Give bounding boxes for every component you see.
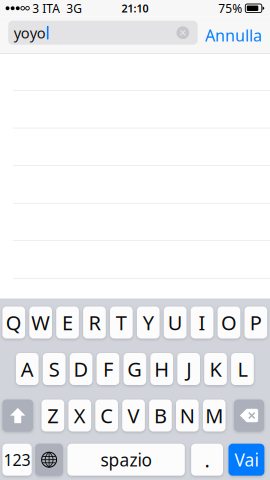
button[interactable]: A: [16, 353, 39, 385]
staticText: B: [154, 402, 167, 429]
staticText: 123: [4, 449, 31, 470]
button[interactable]: W: [29, 306, 52, 338]
button[interactable]: C: [95, 399, 118, 431]
staticText: M: [205, 402, 223, 429]
staticText: D: [73, 356, 88, 382]
staticText: A: [21, 356, 34, 382]
button[interactable]: T: [110, 306, 133, 338]
button[interactable]: Y: [137, 306, 160, 338]
staticText: V: [127, 402, 139, 429]
staticText: R: [88, 309, 100, 336]
button[interactable]: .: [191, 444, 223, 476]
button[interactable]: R: [83, 306, 106, 338]
button[interactable]: P: [244, 306, 267, 338]
button[interactable]: G: [123, 353, 146, 385]
button[interactable]: D: [70, 353, 92, 385]
staticText: F: [103, 356, 113, 382]
button[interactable]: Clear text: [173, 23, 192, 42]
button[interactable]: K: [204, 353, 227, 385]
staticText: Z: [47, 402, 58, 429]
staticText: G: [127, 356, 142, 382]
button[interactable]: F: [97, 353, 119, 385]
button[interactable]: Annulla: [205, 16, 267, 54]
button[interactable]: Backspace: [234, 399, 264, 431]
button[interactable]: X: [68, 399, 91, 431]
staticText: U: [168, 309, 183, 336]
button[interactable]: Q: [2, 306, 25, 338]
button[interactable]: S: [43, 353, 65, 385]
staticText: 3G: [66, 0, 82, 16]
button[interactable]: H: [150, 353, 173, 385]
staticText: 75%: [218, 0, 242, 16]
staticText: spazio: [101, 448, 152, 471]
button[interactable]: L: [231, 353, 254, 385]
button[interactable]: N: [176, 399, 199, 431]
staticText: yoyo: [14, 23, 46, 42]
staticText: W: [31, 309, 50, 336]
button[interactable]: Shift: [2, 399, 33, 431]
staticText: L: [237, 356, 247, 382]
button[interactable]: J: [177, 353, 200, 385]
button[interactable]: 123: [2, 444, 32, 476]
staticText: Vai: [234, 448, 258, 471]
button[interactable]: Vai: [228, 444, 264, 476]
staticText: Y: [143, 309, 154, 336]
button[interactable]: spazio: [67, 444, 185, 476]
staticText: P: [250, 309, 262, 336]
staticText: N: [180, 402, 195, 429]
button[interactable]: E: [56, 306, 79, 338]
button[interactable]: U: [164, 306, 186, 338]
staticText: X: [74, 402, 86, 429]
staticText: E: [62, 309, 73, 336]
staticText: I: [199, 309, 206, 336]
button[interactable]: V: [122, 399, 145, 431]
button[interactable]: I: [191, 306, 213, 338]
staticText: C: [100, 402, 113, 429]
staticText: T: [116, 309, 127, 336]
staticText: J: [186, 356, 191, 382]
button[interactable]: B: [149, 399, 172, 431]
staticText: S: [49, 356, 60, 382]
button[interactable]: Z: [41, 399, 64, 431]
staticText: 21:10: [121, 1, 148, 15]
staticText: 3 ITA: [32, 0, 60, 16]
staticText: Q: [6, 309, 22, 336]
staticText: O: [221, 309, 237, 336]
button[interactable]: Next keyboard: [35, 444, 63, 476]
staticText: H: [154, 356, 169, 382]
button[interactable]: M: [203, 399, 226, 431]
staticText: .: [204, 446, 209, 473]
staticText: Annulla: [205, 25, 262, 46]
staticText: K: [210, 356, 222, 382]
button[interactable]: O: [218, 306, 240, 338]
